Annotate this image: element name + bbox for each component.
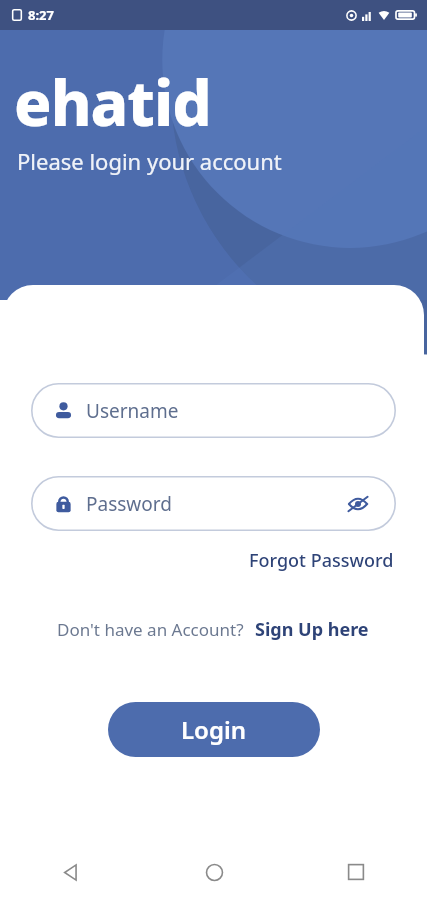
button[interactable]: Sign Up here xyxy=(253,614,371,645)
staticText: Username xyxy=(86,398,179,424)
staticText: Forgot Password xyxy=(249,548,394,573)
staticText: Please login your account xyxy=(17,146,282,176)
staticText: Sign Up here xyxy=(255,617,369,642)
button[interactable] xyxy=(31,383,396,438)
staticText: ehatid xyxy=(14,60,211,144)
button[interactable]: Login xyxy=(108,702,320,757)
button[interactable]: Home xyxy=(143,844,285,900)
button[interactable]: Recent apps xyxy=(285,844,427,900)
staticText: Password xyxy=(86,491,172,517)
button[interactable]: Show password xyxy=(342,488,374,520)
button[interactable]: Back xyxy=(0,844,143,900)
button[interactable] xyxy=(31,476,396,531)
staticText: 8:27 xyxy=(28,6,54,24)
staticText: Don't have an Account? xyxy=(57,618,244,641)
staticText: Login xyxy=(181,713,247,746)
button[interactable]: Forgot Password xyxy=(245,545,398,576)
